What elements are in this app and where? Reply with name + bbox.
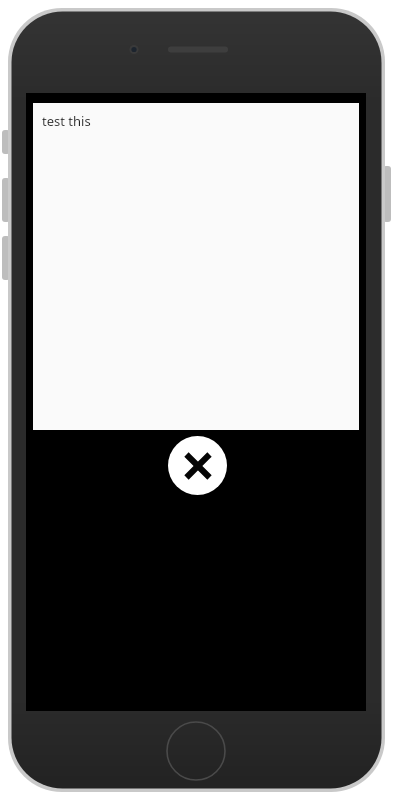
staticText: test this: [42, 112, 91, 130]
button[interactable]: Close: [168, 436, 227, 495]
